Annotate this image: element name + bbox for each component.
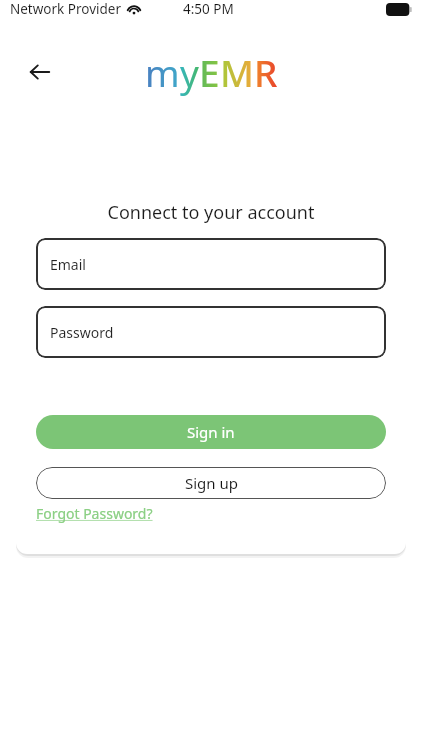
staticText: Sign in — [187, 422, 235, 442]
staticText: 4:50 PM — [183, 0, 234, 18]
button[interactable]: Sign in — [36, 415, 386, 449]
staticText: M — [220, 47, 254, 97]
staticText: Forgot Password? — [36, 504, 153, 523]
staticText: Network Provider — [10, 0, 122, 18]
staticText: Sign up — [185, 473, 238, 493]
button[interactable]: Password — [36, 306, 386, 358]
staticText: Password — [50, 323, 114, 342]
staticText: Email — [50, 255, 86, 274]
staticText: y — [180, 47, 199, 97]
button[interactable]: Forgot Password? — [36, 503, 153, 524]
staticText: m — [145, 47, 180, 97]
button[interactable]: Email — [36, 238, 386, 290]
button[interactable]: Sign up — [36, 467, 386, 499]
staticText: E — [199, 47, 220, 97]
staticText: R — [254, 47, 278, 97]
staticText: Connect to your account — [36, 200, 386, 225]
button[interactable]: Back — [20, 52, 60, 92]
